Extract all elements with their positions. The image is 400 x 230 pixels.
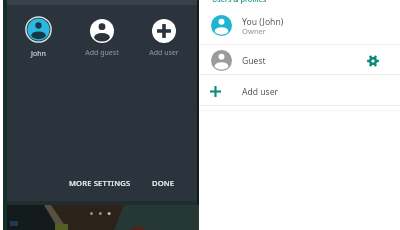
staticText: Users & profiles (212, 0, 267, 4)
button[interactable]: Add guest (72, 19, 132, 58)
button[interactable]: Guest settings (360, 48, 386, 74)
staticText: You (John) (242, 16, 284, 28)
button[interactable]: DONE (147, 173, 180, 193)
button[interactable]: Add user (134, 19, 194, 58)
button[interactable]: You (John) (0, 8, 400, 43)
staticText: MORE SETTINGS (69, 178, 131, 188)
button[interactable]: MORE SETTINGS (64, 173, 136, 193)
staticText: Add user (242, 86, 279, 98)
staticText: John (31, 49, 46, 59)
staticText: Guest (242, 55, 266, 67)
button[interactable]: John (8, 16, 68, 59)
staticText: Add user (149, 48, 179, 58)
staticText: DONE (152, 178, 175, 188)
staticText: Owner (242, 26, 267, 36)
button[interactable]: Add user (0, 77, 400, 106)
staticText: Add guest (85, 48, 119, 58)
button[interactable]: Guest (0, 44, 400, 77)
